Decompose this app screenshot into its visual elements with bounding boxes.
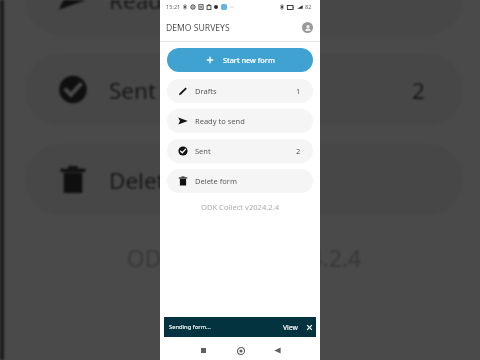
staticText: Delete form xyxy=(109,164,235,194)
button[interactable]: Delete form xyxy=(167,169,313,193)
staticText: 15:21 xyxy=(166,3,181,11)
staticText: ODK Collect v2024.2.4 xyxy=(4,242,480,272)
staticText: Start new form xyxy=(223,55,275,65)
button[interactable]: Home xyxy=(233,343,248,358)
staticText: Ready to send xyxy=(109,0,259,14)
staticText: Ready to send xyxy=(195,116,245,126)
staticText: 2 xyxy=(296,146,301,156)
staticText: 82 xyxy=(305,3,312,11)
button[interactable]: Dismiss xyxy=(306,324,313,331)
button[interactable]: Sent xyxy=(25,53,463,125)
button[interactable]: Recents xyxy=(196,343,211,358)
button[interactable]: Drafts xyxy=(167,79,313,103)
staticText: Sent xyxy=(109,74,157,104)
staticText: 2 xyxy=(412,74,427,104)
staticText: DEMO SURVEYS xyxy=(166,22,230,34)
staticText: View xyxy=(283,323,298,332)
staticText: Delete form xyxy=(195,176,237,186)
button[interactable]: Ready to send xyxy=(25,0,463,35)
staticText: 1 xyxy=(296,86,301,96)
button[interactable]: Start new form xyxy=(167,48,313,72)
staticText: Drafts xyxy=(195,86,217,96)
button[interactable]: Profile xyxy=(302,22,313,33)
button[interactable]: View xyxy=(282,323,299,332)
button[interactable]: Sent xyxy=(167,139,313,163)
button[interactable]: Back xyxy=(270,343,285,358)
staticText: ODK Collect v2024.2.4 xyxy=(160,202,320,212)
button[interactable]: Ready to send xyxy=(167,109,313,133)
staticText: Sent xyxy=(195,146,211,156)
button[interactable]: Delete form xyxy=(25,143,463,215)
staticText: Sending form... xyxy=(169,323,211,331)
